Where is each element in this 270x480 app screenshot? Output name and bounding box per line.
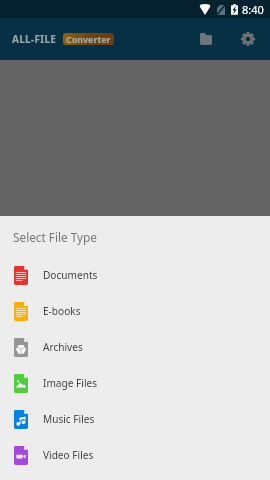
- staticText: Converter: [66, 33, 111, 45]
- staticText: E-books: [43, 304, 81, 318]
- button[interactable]: Archives: [0, 329, 270, 365]
- staticText: Music Files: [43, 412, 95, 426]
- button[interactable]: Video Files: [0, 437, 270, 473]
- button[interactable]: Image Files: [0, 365, 270, 401]
- staticText: Image Files: [43, 376, 98, 390]
- staticText: 8:40: [242, 2, 264, 17]
- button[interactable]: Settings: [227, 18, 269, 60]
- staticText: Select File Type: [13, 229, 97, 245]
- staticText: Documents: [43, 268, 98, 282]
- button[interactable]: Folder: [185, 18, 227, 60]
- button[interactable]: Music Files: [0, 401, 270, 437]
- button[interactable]: Documents: [0, 257, 270, 293]
- staticText: Archives: [43, 340, 83, 354]
- staticText: Video Files: [43, 448, 94, 462]
- button[interactable]: E-books: [0, 293, 270, 329]
- staticText: ALL-FILE: [12, 32, 57, 46]
